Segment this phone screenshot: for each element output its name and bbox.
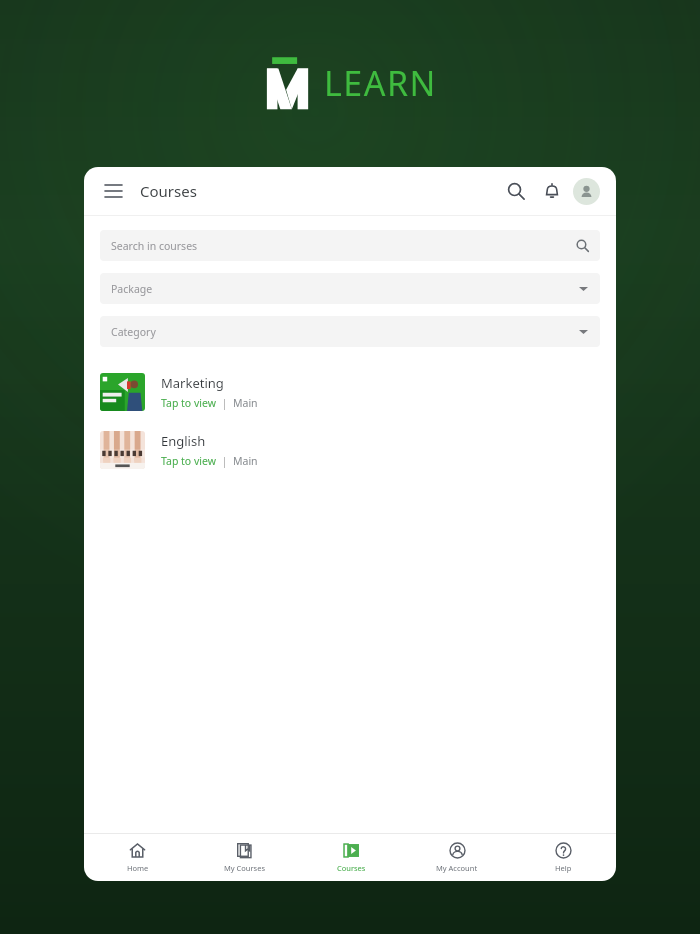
staticText: My Courses: [224, 863, 266, 873]
staticText: Category: [111, 325, 156, 339]
staticText: My Account: [436, 863, 478, 873]
staticText: Home: [127, 863, 149, 873]
staticText: Courses: [140, 181, 197, 201]
button[interactable]: English: [84, 427, 616, 473]
staticText: Main: [233, 454, 258, 468]
button[interactable]: Profile: [573, 178, 600, 205]
staticText: |: [216, 454, 233, 468]
staticText: Package: [111, 282, 153, 296]
staticText: English: [161, 432, 206, 450]
staticText: Help: [555, 863, 572, 873]
button[interactable]: Help: [510, 834, 616, 881]
button[interactable]: Search in courses: [100, 230, 600, 261]
staticText: Main: [233, 396, 258, 410]
staticText: Tap to view: [161, 396, 216, 410]
button[interactable]: Courses: [298, 834, 404, 881]
button[interactable]: Search: [501, 176, 531, 206]
button[interactable]: Menu: [100, 178, 126, 204]
button[interactable]: Marketing: [84, 369, 616, 415]
button[interactable]: My Account: [404, 834, 510, 881]
staticText: Courses: [337, 863, 366, 873]
button[interactable]: Package: [100, 273, 600, 304]
staticText: Tap to view: [161, 454, 216, 468]
staticText: Marketing: [161, 374, 224, 392]
button[interactable]: My Courses: [191, 834, 298, 881]
staticText: LEARN: [324, 60, 437, 106]
staticText: Search in courses: [111, 239, 198, 253]
button[interactable]: Notifications: [537, 176, 567, 206]
staticText: |: [216, 396, 233, 410]
button[interactable]: Home: [84, 834, 191, 881]
button[interactable]: Category: [100, 316, 600, 347]
